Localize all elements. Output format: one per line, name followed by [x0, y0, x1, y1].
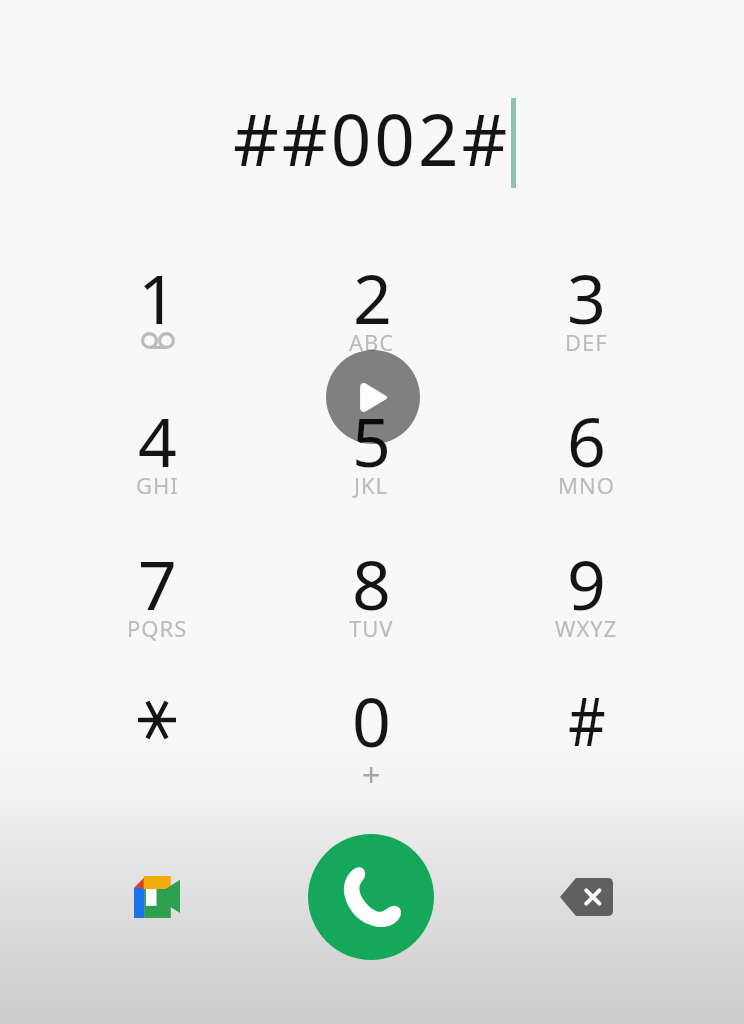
button[interactable]: 9	[479, 523, 694, 666]
staticText: 7	[138, 537, 177, 630]
staticText: DEF	[565, 327, 608, 357]
staticText: 0	[352, 674, 391, 767]
staticText: 2	[353, 251, 392, 344]
button[interactable]: 5	[264, 380, 479, 523]
staticText: 9	[567, 537, 606, 630]
staticText: 1	[138, 251, 177, 344]
button[interactable]: 4	[50, 380, 264, 523]
staticText: GHI	[136, 470, 179, 500]
button[interactable]: 7	[50, 523, 264, 666]
staticText: PQRS	[127, 613, 188, 643]
staticText: MNO	[558, 470, 615, 500]
staticText: #	[568, 673, 606, 766]
button[interactable]: 6	[479, 380, 694, 523]
staticText: ##002#	[233, 90, 511, 187]
button[interactable]: Backspace	[550, 861, 622, 933]
button[interactable]: 2	[264, 237, 479, 380]
staticText: 8	[352, 537, 391, 630]
staticText: ABC	[349, 327, 395, 357]
staticText: +	[362, 753, 381, 789]
staticText: TUV	[349, 613, 394, 643]
staticText: JKL	[354, 470, 389, 500]
staticText: 6	[567, 394, 606, 487]
staticText: 3	[567, 251, 606, 344]
button[interactable]: 1	[50, 237, 264, 380]
button[interactable]: star	[50, 666, 264, 809]
staticText: 5	[352, 394, 391, 487]
button[interactable]: 3	[479, 237, 694, 380]
button[interactable]: Video call	[121, 861, 193, 933]
button[interactable]: 0	[264, 666, 479, 809]
button[interactable]: #	[479, 666, 694, 809]
button[interactable]: 8	[264, 523, 479, 666]
staticText: WXYZ	[555, 613, 618, 643]
button[interactable]: Call	[308, 834, 434, 960]
staticText: 4	[138, 394, 177, 487]
button[interactable]: Play	[326, 350, 420, 444]
